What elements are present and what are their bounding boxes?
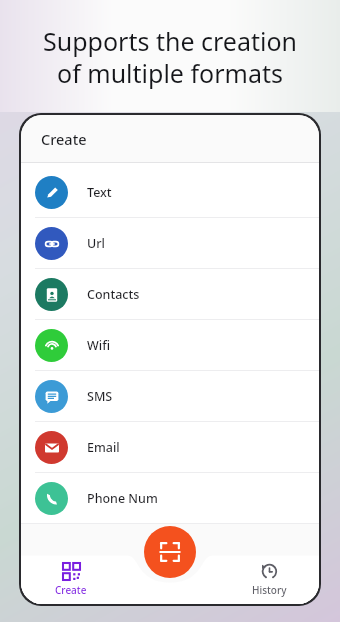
button[interactable]: Contacts bbox=[21, 269, 319, 319]
staticText: Create bbox=[55, 583, 87, 597]
button[interactable]: Text bbox=[21, 167, 319, 217]
button[interactable]: Url bbox=[21, 218, 319, 268]
staticText: Phone Num bbox=[87, 490, 158, 507]
staticText: Supports the creation of multiple format… bbox=[0, 24, 340, 90]
staticText: Create bbox=[41, 129, 87, 149]
button[interactable]: Wifi bbox=[21, 320, 319, 370]
button[interactable]: History bbox=[220, 548, 319, 604]
staticText: Email bbox=[87, 439, 120, 456]
staticText: Text bbox=[87, 184, 112, 201]
staticText: Url bbox=[87, 235, 105, 252]
staticText: History bbox=[252, 583, 287, 597]
staticText: SMS bbox=[87, 388, 113, 405]
staticText: Wifi bbox=[87, 337, 110, 354]
button[interactable]: Scan code bbox=[144, 526, 196, 578]
staticText: Contacts bbox=[87, 286, 140, 303]
button[interactable]: Create bbox=[21, 548, 121, 604]
button[interactable]: SMS bbox=[21, 371, 319, 421]
button[interactable]: Phone Num bbox=[21, 473, 319, 523]
button[interactable]: Email bbox=[21, 422, 319, 472]
